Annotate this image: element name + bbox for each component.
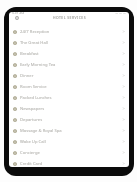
- button[interactable]: Wake Up Call: [9, 136, 129, 147]
- button[interactable]: Newspapers: [9, 103, 129, 114]
- staticText: The Great Hall: [20, 40, 48, 46]
- staticText: Newspapers: [20, 106, 45, 112]
- staticText: Packed Lunches: [20, 95, 52, 101]
- staticText: ▬ ▬ ▬: [115, 12, 126, 14]
- button[interactable]: Credit Card: [9, 158, 129, 167]
- button[interactable]: Room Service: [9, 81, 129, 92]
- staticText: Departures: [20, 117, 43, 123]
- button[interactable]: Concierge: [9, 147, 129, 158]
- staticText: Concierge: [20, 150, 40, 156]
- button[interactable]: Departures: [9, 114, 129, 125]
- button[interactable]: Menu: [13, 14, 21, 22]
- staticText: Credit Card: [20, 161, 43, 167]
- staticText: Breakfast: [20, 51, 39, 57]
- button[interactable]: The Great Hall: [9, 37, 129, 48]
- button[interactable]: 24/7 Reception: [9, 26, 129, 37]
- button[interactable]: Breakfast: [9, 48, 129, 59]
- staticText: Wake Up Call: [20, 139, 46, 145]
- button[interactable]: Early Morning Tea: [9, 59, 129, 70]
- button[interactable]: Massage & Royal Spa: [9, 125, 129, 136]
- staticText: 24/7 Reception: [20, 29, 50, 35]
- staticText: Early Morning Tea: [20, 62, 56, 68]
- staticText: Room Service: [20, 84, 47, 90]
- staticText: Dinner: [20, 73, 34, 79]
- staticText: HOTEL SERVICES: [53, 15, 86, 20]
- staticText: 9:41 AM: [12, 12, 25, 14]
- button[interactable]: Dinner: [9, 70, 129, 81]
- button[interactable]: Packed Lunches: [9, 92, 129, 103]
- staticText: Massage & Royal Spa: [20, 128, 62, 134]
